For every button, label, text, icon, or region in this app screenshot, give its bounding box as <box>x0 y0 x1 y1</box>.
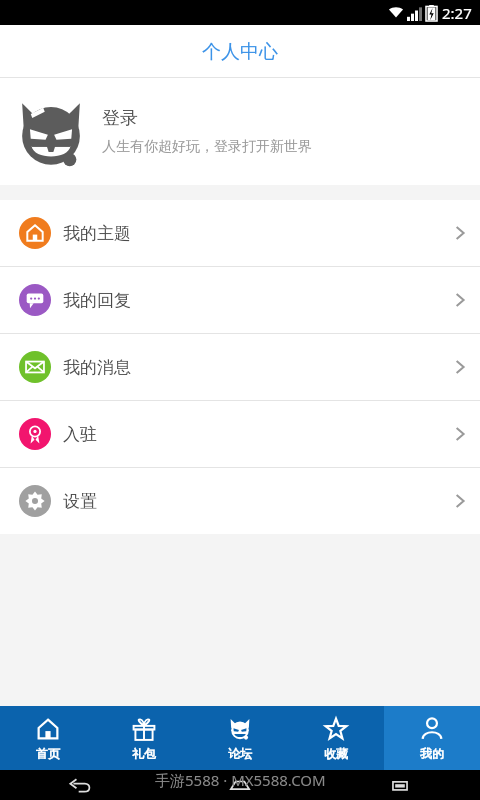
button[interactable]: 我的主题 <box>0 200 480 266</box>
staticText: 礼包 <box>132 746 156 761</box>
staticText: 个人中心 <box>202 40 278 64</box>
button[interactable]: 我的 <box>384 706 480 770</box>
button[interactable]: 首页 <box>0 706 96 770</box>
staticText: 我的主题 <box>63 223 454 244</box>
staticText: 收藏 <box>324 746 348 761</box>
button[interactable]: 入驻 <box>0 401 480 467</box>
button[interactable]: 收藏 <box>288 706 384 770</box>
staticText: 手游5588 · MX5588.COM <box>155 770 326 790</box>
button[interactable]: 论坛 <box>192 706 288 770</box>
staticText: 2:27 <box>442 3 472 23</box>
staticText: 登录 <box>102 107 138 130</box>
staticText: 我的回复 <box>63 290 454 311</box>
staticText: 我的 <box>420 746 444 761</box>
button[interactable]: 设置 <box>0 468 480 534</box>
staticText: 人生有你超好玩，登录打开新世界 <box>102 138 312 156</box>
button[interactable]: 我的回复 <box>0 267 480 333</box>
button[interactable]: 礼包 <box>96 706 192 770</box>
staticText: 入驻 <box>63 424 454 445</box>
button[interactable]: 登录 <box>0 78 480 185</box>
staticText: 论坛 <box>228 746 252 761</box>
staticText: 设置 <box>63 491 454 512</box>
button[interactable]: 我的消息 <box>0 334 480 400</box>
staticText: 我的消息 <box>63 357 454 378</box>
staticText: 首页 <box>36 746 60 761</box>
